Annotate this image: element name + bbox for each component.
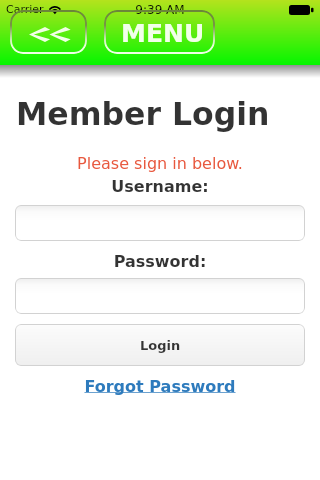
staticText: 9:39 AM	[0, 3, 320, 17]
staticText: Carrier	[6, 3, 44, 16]
button[interactable]: MENU	[104, 10, 215, 54]
staticText: Password:	[0, 252, 320, 271]
staticText: MENU	[121, 19, 205, 48]
staticText: Please sign in below.	[0, 154, 320, 173]
button[interactable]: Forgot Password	[0, 377, 320, 396]
staticText: Member Login	[16, 96, 270, 133]
button[interactable]: Login	[15, 324, 305, 366]
button[interactable]: Back	[10, 10, 87, 54]
button[interactable]	[15, 205, 305, 241]
button[interactable]	[15, 278, 305, 314]
staticText: Login	[140, 338, 181, 353]
staticText: Username:	[0, 177, 320, 196]
